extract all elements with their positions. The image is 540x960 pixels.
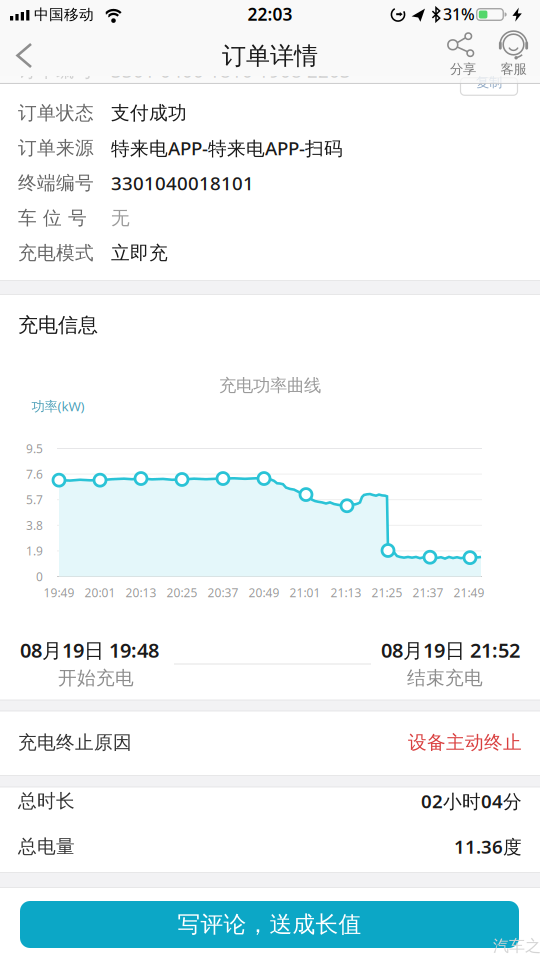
- staticText: 21:13: [330, 584, 361, 600]
- staticText: 1.9: [26, 543, 43, 559]
- staticText: 3301 0400 1810 1908 2203: [111, 58, 351, 83]
- staticText: 订单来源: [18, 136, 94, 159]
- staticText: 20:13: [125, 584, 156, 600]
- staticText: 汽车之家: [493, 936, 540, 956]
- staticText: 写评论，送成长值: [177, 911, 361, 938]
- staticText: 31%: [443, 3, 475, 25]
- button[interactable]: 写评论，送成长值: [20, 901, 519, 948]
- staticText: 21:25: [371, 584, 402, 600]
- staticText: 分享: [450, 61, 476, 77]
- staticText: 充电模式: [18, 241, 94, 264]
- staticText: 02小时04分: [421, 789, 522, 813]
- staticText: 结束充电: [407, 666, 483, 689]
- staticText: 功率(kW): [31, 397, 84, 415]
- staticText: 5.7: [26, 492, 43, 508]
- staticText: 08月19日 19:48: [20, 637, 159, 663]
- staticText: 9.5: [26, 440, 43, 456]
- staticText: 20:01: [84, 584, 115, 600]
- staticText: 复制: [476, 74, 502, 90]
- staticText: 总时长: [18, 789, 75, 812]
- staticText: 车 位 号: [18, 206, 87, 229]
- staticText: 7.6: [26, 466, 43, 482]
- staticText: 21:49: [453, 584, 484, 600]
- staticText: 总电量: [18, 835, 75, 858]
- staticText: 充电信息: [18, 313, 98, 337]
- staticText: 3301040018101: [111, 171, 254, 195]
- button[interactable]: 复制: [460, 78, 517, 95]
- staticText: 08月19日 21:52: [381, 637, 520, 663]
- button[interactable]: 客服: [489, 27, 537, 77]
- staticText: 0: [36, 568, 43, 584]
- staticText: 中国移动: [34, 5, 94, 23]
- staticText: 21:01: [289, 584, 320, 600]
- staticText: 19:49: [43, 584, 74, 600]
- staticText: 11.36度: [454, 834, 522, 859]
- staticText: 支付成功: [111, 101, 187, 124]
- staticText: 特来电APP-特来电APP-扫码: [111, 136, 343, 160]
- staticText: 充电终止原因: [18, 731, 132, 754]
- staticText: 订单详情: [222, 41, 318, 71]
- staticText: 立即充: [111, 241, 168, 264]
- staticText: 设备主动终止: [408, 731, 522, 754]
- staticText: 21:37: [412, 584, 443, 600]
- staticText: 22:03: [247, 2, 292, 25]
- button[interactable]: 返回: [4, 30, 48, 80]
- staticText: 充电功率曲线: [219, 375, 321, 396]
- staticText: 开始充电: [58, 666, 134, 689]
- staticText: 3.8: [26, 517, 43, 533]
- staticText: 20:25: [166, 584, 197, 600]
- button[interactable]: 分享: [439, 27, 487, 77]
- staticText: 订单状态: [18, 101, 94, 124]
- staticText: 订单编号: [18, 59, 94, 82]
- staticText: 无: [111, 206, 130, 229]
- staticText: 终端编号: [18, 171, 94, 194]
- staticText: 20:49: [248, 584, 279, 600]
- staticText: 客服: [500, 61, 526, 77]
- staticText: 20:37: [207, 584, 238, 600]
